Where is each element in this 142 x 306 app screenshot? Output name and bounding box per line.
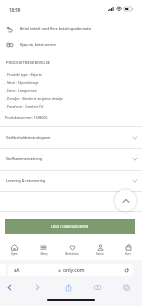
staticText: PRODUKTBESKRIVELSE bbox=[6, 60, 51, 65]
staticText: Ønskeliste bbox=[65, 252, 79, 256]
staticText: Meny bbox=[40, 252, 48, 256]
button[interactable]: Bookmarks bbox=[93, 283, 102, 292]
button[interactable]: Meny bbox=[29, 240, 58, 260]
button[interactable]: Kurv bbox=[114, 240, 142, 260]
staticText: Levering & returnering bbox=[6, 178, 46, 183]
button[interactable]: Betal enkelt med flere betalingsalternat… bbox=[0, 23, 142, 34]
button[interactable]: Stoffsammensetning bbox=[0, 148, 142, 169]
staticText: - Detaljer : Broderie anglaise detalje bbox=[5, 96, 63, 101]
staticText: Vedlikeholdsinstruksjoner bbox=[6, 135, 51, 140]
staticText: Hjem bbox=[11, 252, 18, 256]
button[interactable]: Kjøp nå, betal senere bbox=[0, 39, 142, 50]
staticText: - Passform : Comfort Fit bbox=[5, 104, 44, 109]
button[interactable]: Konto bbox=[86, 240, 114, 260]
staticText: aA bbox=[14, 267, 20, 273]
button[interactable]: Scroll to top bbox=[116, 191, 136, 211]
button[interactable]: LEGG I HANDLEKURVEN bbox=[5, 219, 135, 234]
staticText: Konto bbox=[96, 252, 104, 256]
button[interactable]: Vedlikeholdsinstruksjoner bbox=[0, 127, 142, 148]
staticText: Stoffsammensetning bbox=[6, 156, 42, 161]
button[interactable]: Ønskeliste bbox=[58, 240, 86, 260]
staticText: 18:59 bbox=[9, 7, 21, 13]
staticText: Kjøp nå, betal senere bbox=[20, 42, 57, 47]
staticText: Betal enkelt med flere betalingsalternat… bbox=[20, 26, 92, 31]
button[interactable]: Levering & returnering bbox=[0, 170, 142, 191]
button[interactable]: Back bbox=[5, 283, 14, 292]
staticText: Kurv bbox=[125, 252, 131, 256]
button[interactable]: Share bbox=[64, 283, 73, 292]
button[interactable]: aA bbox=[8, 264, 133, 276]
staticText: only.com bbox=[63, 267, 85, 274]
staticText: - Neck : Skjortekrage bbox=[5, 80, 39, 85]
button[interactable]: Tabs bbox=[122, 283, 131, 292]
button[interactable]: Forward bbox=[33, 283, 42, 292]
staticText: - Produkt type : Skjorte bbox=[5, 72, 43, 77]
staticText: - Erme : Langermee bbox=[5, 88, 37, 93]
staticText: Produktnummer: 1698606 bbox=[5, 115, 48, 120]
staticText: LEGG I HANDLEKURVEN bbox=[51, 225, 89, 229]
button[interactable]: Hjem bbox=[0, 240, 29, 260]
